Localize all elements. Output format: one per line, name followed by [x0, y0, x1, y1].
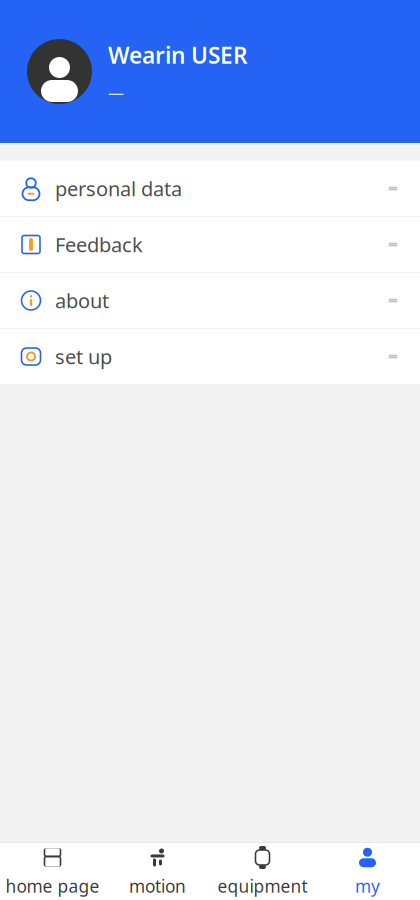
staticText: home page: [5, 874, 99, 897]
button[interactable]: Feedback: [0, 217, 420, 272]
staticText: set up: [55, 343, 112, 370]
staticText: my: [355, 874, 380, 897]
staticText: Feedback: [55, 231, 143, 258]
staticText: Wearin USER: [108, 40, 248, 70]
button[interactable]: home page: [0, 843, 105, 900]
button[interactable]: personal data: [0, 161, 420, 216]
staticText: equipment: [217, 874, 307, 897]
staticText: —: [108, 82, 124, 103]
button[interactable]: set up: [0, 329, 420, 384]
button[interactable]: equipment: [210, 843, 315, 900]
button[interactable]: motion: [105, 843, 210, 900]
button[interactable]: about: [0, 273, 420, 328]
staticText: motion: [129, 874, 186, 897]
staticText: about: [55, 287, 109, 314]
button[interactable]: my: [315, 843, 420, 900]
staticText: personal data: [55, 175, 182, 202]
